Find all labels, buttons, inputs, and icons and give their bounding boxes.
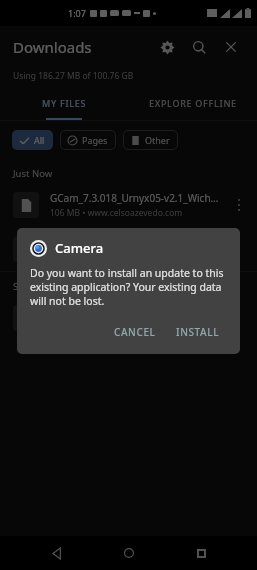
staticText: Other (145, 134, 170, 146)
button[interactable]: INSTALL (169, 320, 227, 344)
staticText: 1:07 (68, 7, 86, 19)
button[interactable]: More options (229, 303, 249, 333)
button[interactable]: EXPLORE OFFLINE (128, 88, 257, 118)
button[interactable]: Pages (60, 130, 116, 150)
staticText: Do you want to install an update to this… (30, 266, 227, 308)
staticText: All (34, 134, 45, 146)
button[interactable]: https://fanfight.com/appdownload/ (0, 296, 257, 340)
button[interactable]: GCam_7.3.018_Urnyx05-v2.1_Wichaya_... (0, 183, 257, 227)
staticText: https://fanfight.com/appdownload/ (50, 304, 217, 318)
button[interactable]: Settings (154, 34, 180, 60)
button[interactable]: Close (218, 34, 244, 60)
staticText: Just Now (13, 167, 53, 180)
staticText: Camera (55, 239, 104, 257)
button[interactable]: More options (229, 234, 249, 264)
staticText: CANCEL (114, 325, 156, 339)
staticText: Sep 23, 2020 (13, 280, 70, 293)
button[interactable]: Recents (184, 536, 218, 570)
staticText: Using 186.27 MB of 100.76 GB (13, 70, 134, 82)
staticText: 0.91 MB • fanfight.com (50, 320, 141, 332)
staticText: INSTALL (176, 325, 220, 339)
button[interactable]: All (12, 130, 53, 150)
staticText: 262 kB • www.gamezy.com (50, 251, 157, 263)
button[interactable]: MY FILES (0, 88, 128, 118)
button[interactable]: Back (39, 536, 73, 570)
button[interactable]: More options (229, 190, 249, 220)
staticText: EXPLORE OFFLINE (149, 97, 237, 109)
button[interactable]: Gamezy_20201111_Rel.apk (0, 227, 257, 271)
button[interactable]: Home (112, 536, 146, 570)
staticText: GCam_7.3.018_Urnyx05-v2.1_Wichaya_... (50, 191, 223, 205)
button[interactable]: Search (186, 34, 212, 60)
staticText: MY FILES (42, 97, 87, 109)
staticText: Pages (82, 134, 108, 146)
staticText: 106 MB • www.celsoazevedo.com (50, 207, 183, 219)
staticText: Downloads (13, 37, 92, 57)
button[interactable]: Other (123, 130, 178, 150)
staticText: Gamezy_20201111_Rel.apk (50, 235, 177, 249)
button[interactable]: CANCEL (107, 320, 163, 344)
